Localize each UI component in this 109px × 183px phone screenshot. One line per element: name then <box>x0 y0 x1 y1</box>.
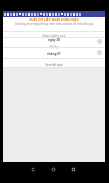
button[interactable]: Home <box>48 164 58 174</box>
staticText: tháng 01 <box>3 52 105 56</box>
staticText: Vui lòng chọn ngày tháng năm sinh của bạ… <box>3 22 105 26</box>
staticText: Tháng <box>3 45 105 49</box>
staticText: Xem kết quả <box>3 63 105 67</box>
button[interactable] <box>3 47 105 58</box>
button[interactable]: Back <box>28 164 38 174</box>
button[interactable]: Recent apps <box>68 164 78 174</box>
staticText: Ngày chứng sinh <box>3 34 105 38</box>
button[interactable] <box>3 58 105 67</box>
staticText: ngày 28 <box>3 38 105 42</box>
button[interactable] <box>3 37 105 48</box>
staticText: XUẤT DỮ LIỆU NGÀY ĐÚNG MẪU <box>3 18 105 22</box>
